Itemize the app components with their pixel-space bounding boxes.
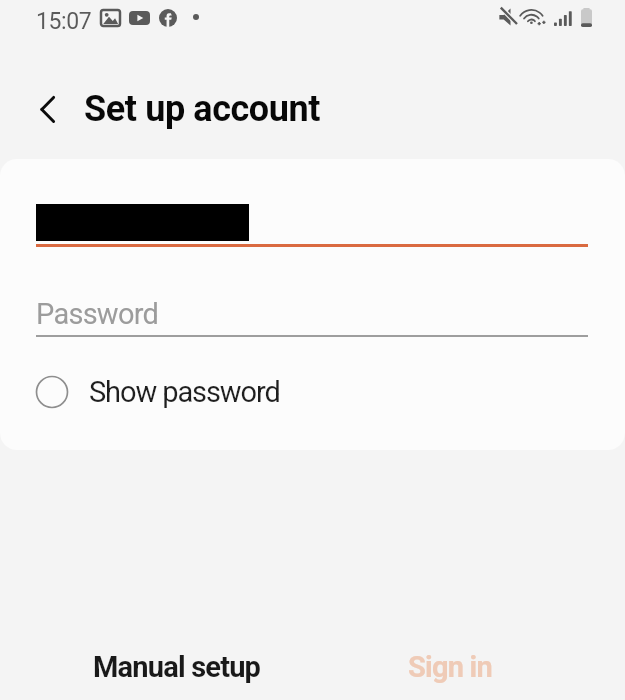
button[interactable]: Email address [36, 199, 588, 248]
staticText: Password [36, 297, 159, 331]
button[interactable]: Password [36, 292, 588, 338]
button[interactable]: Back [16, 85, 64, 133]
button[interactable]: Manual setup [28, 637, 326, 697]
staticText: Manual setup [93, 650, 261, 684]
staticText: Sign in [408, 650, 492, 684]
button[interactable]: Sign in [301, 637, 599, 697]
staticText: Set up account [84, 88, 321, 130]
button[interactable]: Show password [28, 366, 280, 418]
staticText: Show password [89, 375, 280, 409]
staticText: 15:07 [36, 8, 92, 35]
